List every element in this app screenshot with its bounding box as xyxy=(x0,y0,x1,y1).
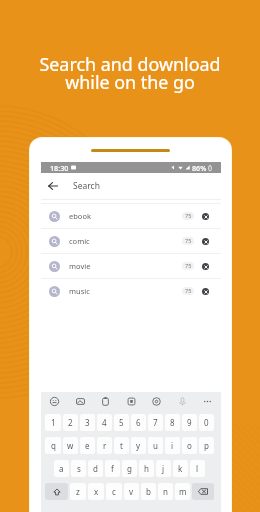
staticText: t xyxy=(120,440,123,451)
staticText: z xyxy=(76,486,80,497)
button[interactable]: w xyxy=(63,437,78,454)
button[interactable]: 6 xyxy=(131,414,146,431)
staticText: ebook xyxy=(69,211,91,221)
staticText: j xyxy=(162,463,165,474)
button[interactable]: p xyxy=(199,437,214,454)
button[interactable]: Keyboard tool 3 xyxy=(125,395,138,408)
staticText: n xyxy=(163,486,168,497)
staticText: 4 xyxy=(102,417,107,428)
button[interactable]: 2 xyxy=(63,414,78,431)
staticText: p xyxy=(204,440,209,451)
button[interactable]: b xyxy=(141,483,156,500)
button[interactable]: 9 xyxy=(182,414,197,431)
button[interactable]: Keyboard tool 2 xyxy=(99,395,112,408)
staticText: d xyxy=(93,463,98,474)
staticText: 86% xyxy=(192,163,207,173)
staticText: v xyxy=(129,486,134,497)
staticText: movie xyxy=(69,261,91,271)
button[interactable]: Keyboard tool 0 xyxy=(48,395,61,408)
staticText: Search and download while on the go xyxy=(39,52,221,94)
button[interactable]: f xyxy=(105,460,120,477)
button[interactable]: Backspace xyxy=(192,483,214,500)
staticText: 75 xyxy=(185,262,192,270)
button[interactable]: Remove xyxy=(199,285,212,298)
button[interactable]: g xyxy=(122,460,137,477)
staticText: q xyxy=(51,440,56,451)
button[interactable]: Remove xyxy=(199,210,212,223)
staticText: e xyxy=(85,440,90,451)
staticText: 75 xyxy=(185,287,192,295)
button[interactable]: h xyxy=(139,460,154,477)
button[interactable]: 3 xyxy=(80,414,95,431)
button[interactable]: e xyxy=(80,437,95,454)
button[interactable]: 8 xyxy=(165,414,180,431)
staticText: music xyxy=(69,286,90,296)
button[interactable]: a xyxy=(54,460,69,477)
staticText: 6 xyxy=(136,417,141,428)
button[interactable]: x xyxy=(88,483,104,500)
button[interactable]: s xyxy=(71,460,86,477)
staticText: f xyxy=(111,463,114,474)
button[interactable]: n xyxy=(158,483,173,500)
button[interactable]: Remove xyxy=(199,260,212,273)
button[interactable]: u xyxy=(148,437,163,454)
staticText: i xyxy=(171,440,174,451)
button[interactable]: d xyxy=(88,460,103,477)
button[interactable]: Remove xyxy=(199,235,212,248)
button[interactable]: Back xyxy=(41,174,65,198)
staticText: 8 xyxy=(170,417,175,428)
staticText: 2 xyxy=(68,417,73,428)
button[interactable]: Shift xyxy=(45,483,68,500)
staticText: 18:30 xyxy=(50,163,69,173)
button[interactable]: m xyxy=(175,483,190,500)
button[interactable]: music xyxy=(41,279,221,303)
button[interactable]: i xyxy=(165,437,180,454)
staticText: 75 xyxy=(185,212,192,220)
button[interactable]: movie xyxy=(41,254,221,278)
button[interactable]: l xyxy=(190,460,205,477)
button[interactable]: ebook xyxy=(41,204,221,228)
button[interactable]: Keyboard tool 5 xyxy=(176,395,189,408)
staticText: 1 xyxy=(51,417,56,428)
button[interactable]: k xyxy=(173,460,188,477)
staticText: 3 xyxy=(85,417,90,428)
button[interactable]: 5 xyxy=(114,414,129,431)
staticText: Search xyxy=(73,180,100,192)
staticText: g xyxy=(127,463,132,474)
button[interactable]: Keyboard tool 4 xyxy=(150,395,163,408)
button[interactable]: v xyxy=(124,483,139,500)
staticText: 9 xyxy=(187,417,192,428)
staticText: k xyxy=(178,463,183,474)
button[interactable]: comic xyxy=(41,229,221,253)
button[interactable]: y xyxy=(131,437,146,454)
button[interactable]: 7 xyxy=(148,414,163,431)
staticText: h xyxy=(144,463,149,474)
staticText: m xyxy=(179,486,187,497)
staticText: c xyxy=(112,486,116,497)
button[interactable]: r xyxy=(97,437,112,454)
staticText: u xyxy=(153,440,158,451)
staticText: 7 xyxy=(153,417,158,428)
staticText: b xyxy=(146,486,151,497)
staticText: r xyxy=(103,440,107,451)
staticText: 75 xyxy=(185,237,192,245)
button[interactable]: 4 xyxy=(97,414,112,431)
button[interactable]: o xyxy=(182,437,197,454)
button[interactable]: c xyxy=(106,483,122,500)
staticText: l xyxy=(196,463,199,474)
button[interactable]: j xyxy=(156,460,171,477)
button[interactable]: Keyboard tool 6 xyxy=(201,395,214,408)
button[interactable]: 1 xyxy=(45,414,61,431)
button[interactable]: q xyxy=(45,437,61,454)
staticText: y xyxy=(136,440,141,451)
staticText: o xyxy=(187,440,192,451)
button[interactable]: t xyxy=(114,437,129,454)
staticText: x xyxy=(94,486,99,497)
staticText: 5 xyxy=(119,417,124,428)
staticText: s xyxy=(77,463,81,474)
button[interactable]: 0 xyxy=(199,414,214,431)
staticText: a xyxy=(59,463,64,474)
button[interactable]: Keyboard tool 1 xyxy=(74,395,87,408)
button[interactable]: z xyxy=(70,483,86,500)
staticText: comic xyxy=(69,236,90,246)
